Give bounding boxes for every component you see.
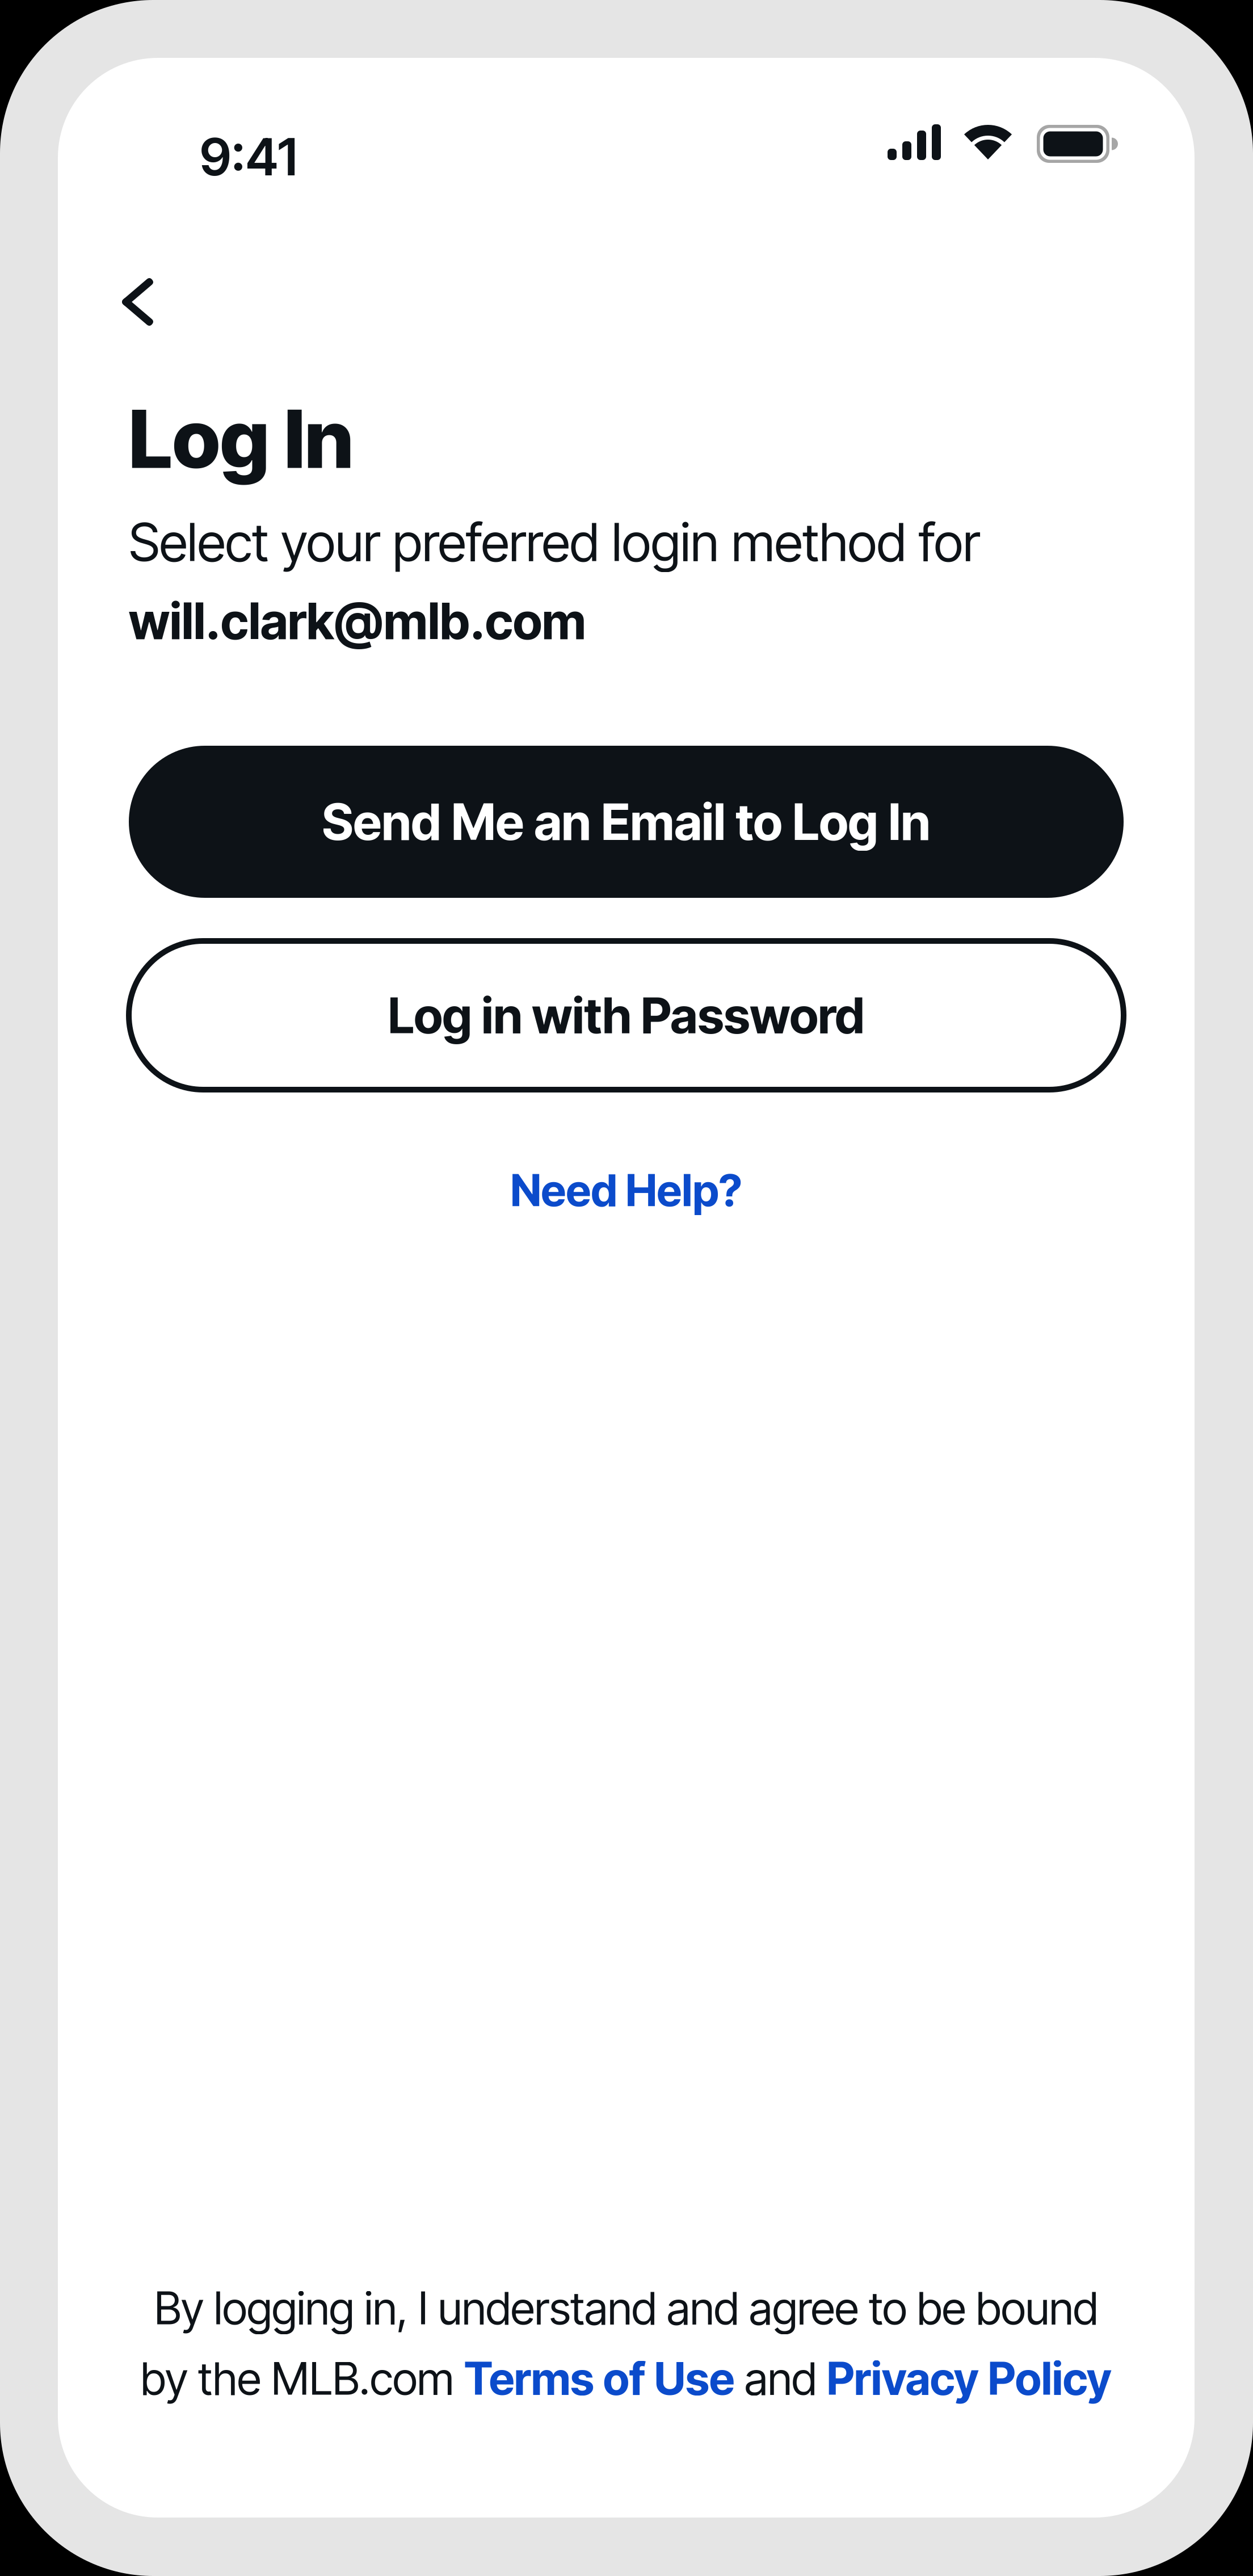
staticText: Terms of Use [464, 2351, 734, 2406]
staticText: Select your preferred login method for [129, 510, 980, 574]
button[interactable]: Privacy Policy [827, 2351, 1112, 2406]
button[interactable]: Back [121, 259, 207, 344]
staticText: and [734, 2351, 827, 2406]
staticText: by the MLB.com [141, 2351, 464, 2406]
staticText: will.clark@mlb.com [129, 591, 586, 651]
staticText: 9:41 [200, 125, 297, 188]
staticText: Need Help? [510, 1164, 742, 1217]
button[interactable]: Terms of Use [464, 2351, 734, 2406]
staticText: Log In [129, 390, 354, 487]
button[interactable]: Send Me an Email to Log In [129, 746, 1124, 898]
staticText: Privacy Policy [827, 2351, 1112, 2406]
staticText: Send Me an Email to Log In [322, 792, 930, 852]
button[interactable]: Need Help? [129, 1159, 1124, 1221]
staticText: Log in with Password [388, 986, 865, 1045]
button[interactable]: Log in with Password [129, 941, 1124, 1090]
staticText: By logging in, I understand and agree to… [154, 2281, 1098, 2335]
